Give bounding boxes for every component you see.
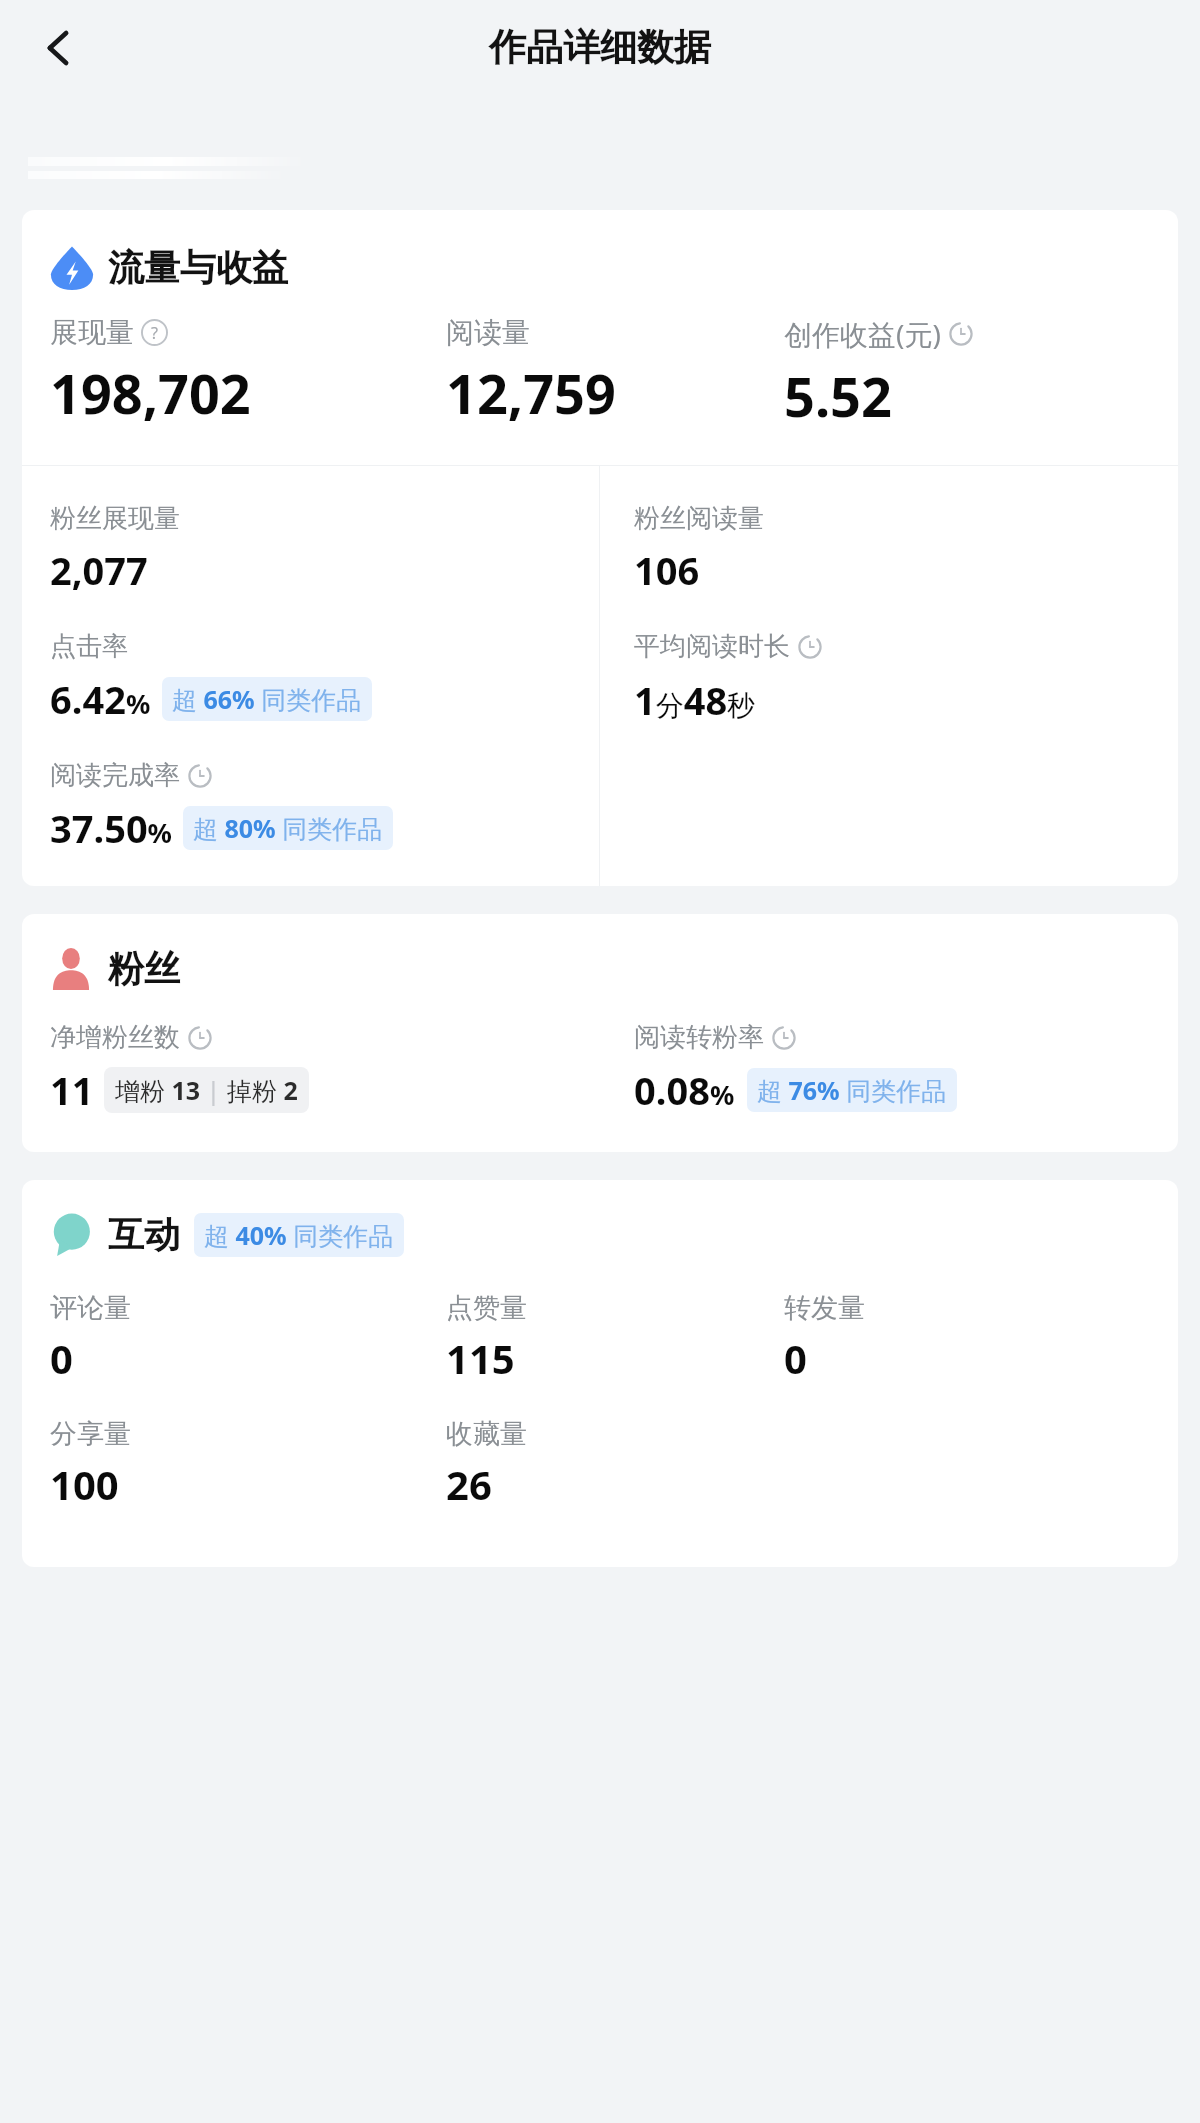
button[interactable]: Back — [22, 12, 94, 84]
staticText: 作品详细数据 — [489, 24, 711, 71]
button[interactable]: 超 66% 同类作品 — [162, 677, 372, 721]
staticText: 超 66% 同类作品 — [172, 682, 362, 716]
staticText: 1分48秒 — [634, 674, 756, 726]
staticText: 净增粉丝数 — [50, 1021, 180, 1054]
button[interactable]: 超 40% 同类作品 — [194, 1213, 404, 1257]
button[interactable]: 增粉 13 | 掉粉 2 — [104, 1067, 309, 1113]
staticText: 11 — [50, 1064, 94, 1116]
staticText: 收藏量 — [446, 1417, 527, 1451]
staticText: 超 80% 同类作品 — [193, 811, 383, 845]
staticText: 流量与收益 — [108, 245, 288, 290]
staticText: 粉丝阅读量 — [634, 502, 764, 535]
staticText: 分享量 — [50, 1417, 131, 1451]
staticText: 阅读完成率 — [50, 759, 180, 792]
staticText: 阅读转粉率 — [634, 1021, 764, 1054]
staticText: 0.08% — [634, 1064, 735, 1116]
button[interactable]: 超 76% 同类作品 — [747, 1068, 957, 1112]
staticText: ? — [151, 322, 159, 344]
staticText: 12,759 — [446, 356, 616, 430]
staticText: 2,077 — [50, 544, 148, 596]
staticText: 点赞量 — [446, 1291, 527, 1325]
button[interactable]: 超 80% 同类作品 — [183, 806, 393, 850]
staticText: 展现量 — [50, 315, 134, 350]
staticText: 37.50% — [50, 802, 172, 854]
staticText: 6.42% — [50, 673, 151, 725]
staticText: 超 40% 同类作品 — [204, 1218, 394, 1252]
staticText: 点击率 — [50, 630, 128, 663]
staticText: 超 76% 同类作品 — [757, 1073, 947, 1107]
staticText: 5.52 — [784, 359, 892, 433]
staticText: 106 — [634, 544, 700, 596]
staticText: 转发量 — [784, 1291, 865, 1325]
staticText: 评论量 — [50, 1291, 131, 1325]
staticText: 粉丝 — [108, 946, 180, 991]
staticText: 100 — [50, 1457, 119, 1511]
staticText: 115 — [446, 1331, 515, 1385]
staticText: 26 — [446, 1457, 492, 1511]
staticText: 阅读量 — [446, 315, 530, 350]
staticText: 粉丝展现量 — [50, 502, 180, 535]
staticText: 0 — [784, 1331, 807, 1385]
staticText: 创作收益(元) — [784, 315, 941, 353]
staticText: 平均阅读时长 — [634, 630, 790, 663]
staticText: 198,702 — [50, 356, 251, 430]
staticText: 0 — [50, 1331, 73, 1385]
staticText: 互动 — [108, 1212, 180, 1257]
staticText: 增粉 13 | 掉粉 2 — [115, 1073, 298, 1107]
